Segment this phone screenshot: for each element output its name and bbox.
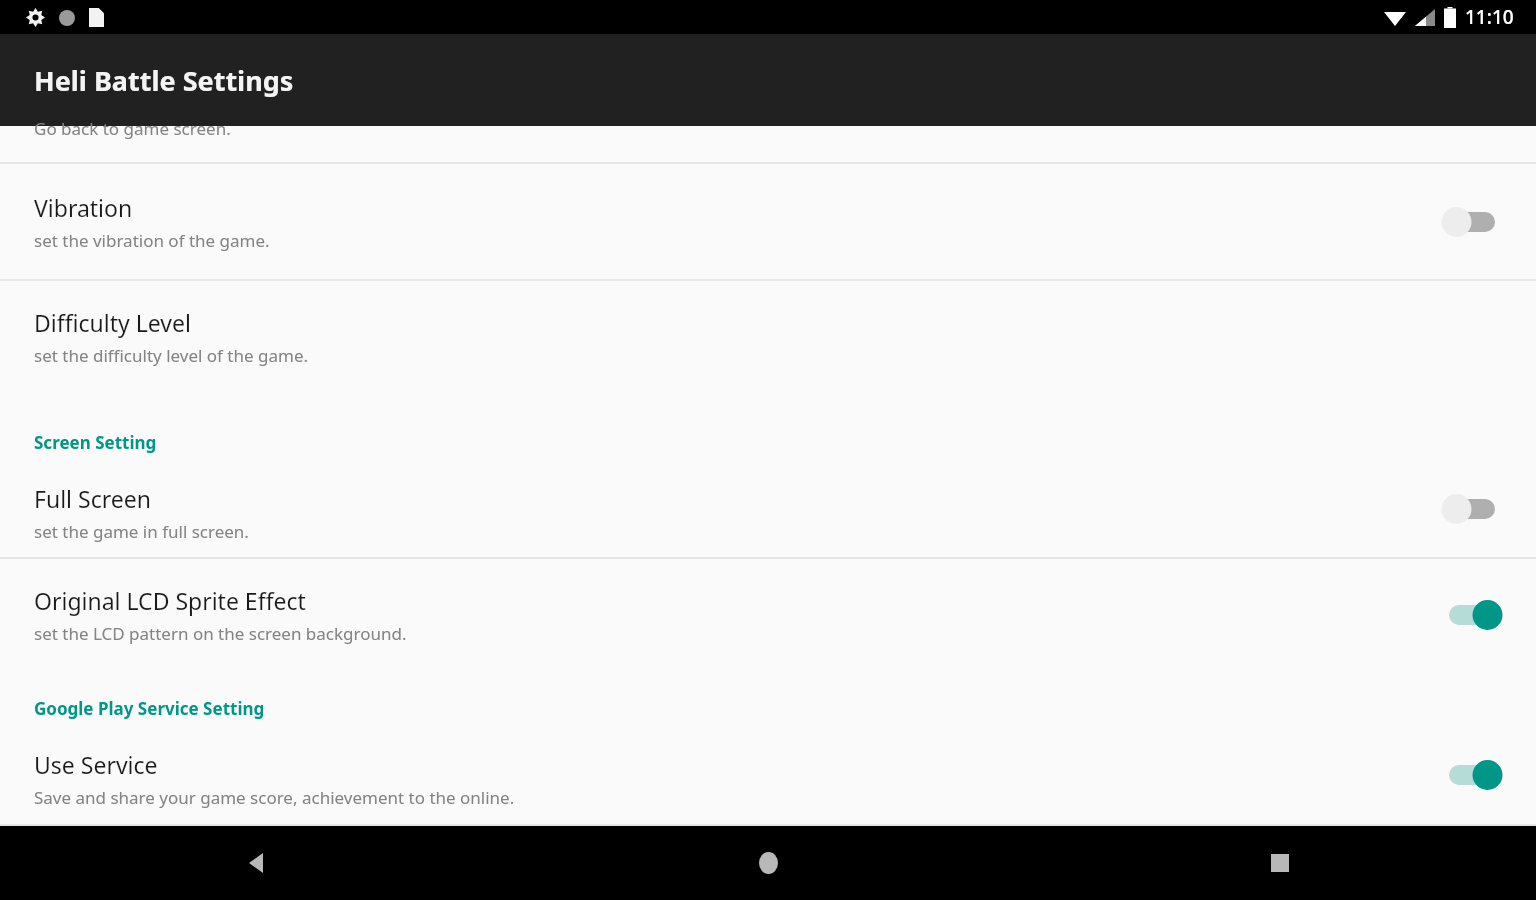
button[interactable]: Original LCD Sprite Effect [0, 559, 1536, 671]
button[interactable]: Difficulty Level [0, 281, 1536, 393]
staticText: set the difficulty level of the game. [34, 344, 309, 367]
button[interactable]: Recent apps [1024, 826, 1536, 900]
staticText: Vibration [34, 192, 133, 223]
staticText: Go back to game screen. [34, 117, 231, 140]
staticText: Heli Battle Settings [34, 62, 294, 99]
staticText: Use Service [34, 749, 158, 780]
button[interactable]: Toggle on [1436, 752, 1508, 798]
button[interactable]: Home [512, 826, 1024, 900]
staticText: Save and share your game score, achievem… [34, 786, 515, 809]
button[interactable]: Back [0, 826, 512, 900]
staticText: set the game in full screen. [34, 520, 249, 543]
button[interactable]: Vibration [0, 164, 1536, 279]
button[interactable]: Toggle off [1436, 486, 1508, 532]
button[interactable]: Use Service [0, 726, 1536, 824]
staticText: Full Screen [34, 483, 151, 514]
button[interactable]: Toggle off [1436, 199, 1508, 245]
staticText: Difficulty Level [34, 307, 191, 338]
staticText: Original LCD Sprite Effect [34, 585, 306, 616]
staticText: 11:10 [1465, 4, 1514, 30]
button[interactable]: Full Screen [0, 460, 1536, 557]
staticText: Google Play Service Setting [34, 697, 265, 720]
staticText: set the vibration of the game. [34, 229, 270, 252]
staticText: Screen Setting [34, 431, 157, 454]
staticText: set the LCD pattern on the screen backgr… [34, 622, 407, 645]
button[interactable]: Toggle on [1436, 592, 1508, 638]
